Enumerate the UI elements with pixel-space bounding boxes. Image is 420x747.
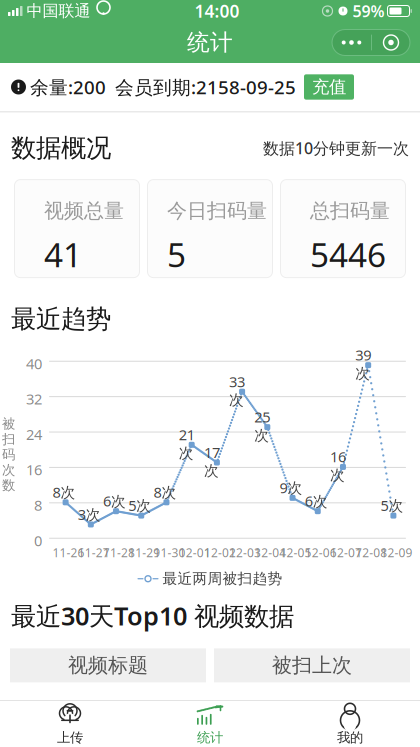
staticText: 5次 [380, 496, 403, 515]
staticText: 中国联通 [26, 1, 90, 21]
staticText: 数 [2, 477, 15, 494]
staticText: 16 [26, 460, 42, 479]
staticText: 11-28 [103, 545, 135, 561]
staticText: 12-09 [380, 545, 412, 561]
button[interactable]: 统计 [140, 700, 280, 747]
staticText: 6次 [305, 491, 328, 511]
staticText: 39次 [355, 345, 371, 383]
staticText: 11-27 [78, 545, 110, 561]
staticText: 总扫码量 [310, 199, 390, 223]
staticText: 12-07 [330, 545, 362, 561]
staticText: 14:00 [194, 0, 239, 22]
staticText: 统计 [187, 29, 233, 56]
button[interactable]: 上传 [0, 700, 140, 747]
staticText: 数据概况 [11, 132, 111, 164]
button[interactable]: Close [372, 29, 410, 55]
staticText: 5446 [310, 232, 386, 276]
staticText: 统计 [197, 729, 223, 746]
staticText: 11-26 [53, 545, 85, 561]
staticText: 12-03 [229, 545, 261, 561]
staticText: 视频标题 [68, 653, 148, 678]
staticText: 充值 [312, 76, 346, 98]
staticText: 12-04 [254, 545, 286, 561]
staticText: 40 [26, 354, 42, 373]
button[interactable]: 我的 [280, 700, 420, 747]
staticText: 余量:200 [30, 75, 106, 99]
staticText: 上传 [57, 729, 83, 746]
staticText: 41 [44, 232, 82, 276]
staticText: 16次 [330, 447, 346, 484]
staticText: 33次 [229, 372, 245, 409]
staticText: 12-02 [204, 545, 236, 561]
staticText: 21次 [179, 425, 195, 462]
staticText: 24 [26, 424, 42, 444]
staticText: 最近两周被扫趋势 [162, 570, 282, 588]
staticText: 今日扫码量 [167, 199, 267, 223]
staticText: 被扫上次 [272, 653, 352, 678]
staticText: 12-06 [305, 545, 337, 561]
staticText: 最近30天Top10 视频数据 [11, 599, 294, 632]
staticText: 0 [34, 531, 42, 550]
staticText: 59% [352, 0, 384, 22]
staticText: 12-08 [355, 545, 387, 561]
staticText: 25次 [254, 407, 270, 445]
button[interactable]: More [332, 29, 371, 55]
button[interactable]: 充值 [304, 74, 354, 100]
staticText: 3次 [78, 504, 101, 524]
staticText: 11-30 [153, 545, 185, 561]
staticText: 8次 [153, 482, 176, 502]
staticText: 12-01 [179, 545, 211, 561]
staticText: 被 [2, 416, 15, 432]
staticText: 11-29 [128, 545, 160, 561]
staticText: 8 [34, 495, 42, 515]
staticText: 12-05 [279, 545, 311, 561]
staticText: 5 [167, 232, 186, 276]
staticText: 9次 [279, 478, 302, 497]
staticText: 17次 [204, 442, 220, 480]
staticText: 会员到期:2158-09-25 [115, 75, 296, 99]
staticText: 最近趋势 [11, 304, 111, 335]
staticText: 码 [2, 446, 15, 463]
staticText: 5次 [128, 496, 151, 515]
staticText: 我的 [337, 729, 363, 746]
staticText: 扫 [2, 431, 15, 447]
staticText: 数据10分钟更新一次 [263, 137, 409, 159]
staticText: 次 [2, 462, 15, 478]
staticText: 视频总量 [44, 199, 124, 223]
staticText: 8次 [53, 482, 76, 502]
staticText: 6次 [103, 491, 126, 511]
staticText: 32 [26, 389, 42, 409]
